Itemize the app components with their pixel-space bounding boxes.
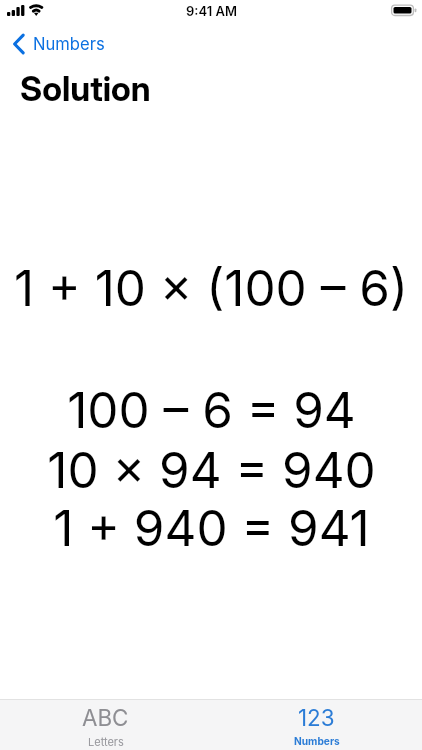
button[interactable]: 123 [211,700,422,750]
staticText: 100 – 6 = 94 [67,380,356,440]
button[interactable]: ABC [0,700,211,750]
staticText: 1 + 10 × (100 – 6) [14,258,408,318]
other: Back to Numbers [12,33,25,55]
staticText: 10 × 94 = 940 [47,440,376,500]
staticText: 123 [298,704,335,731]
staticText: Numbers [33,34,105,54]
staticText: ABC [82,704,129,731]
staticText: 1 + 940 = 941 [53,498,370,558]
staticText: Solution [20,68,151,109]
staticText: Numbers [294,735,340,747]
staticText: 9:41 AM [186,3,237,19]
button[interactable]: Back to Numbers [0,30,105,58]
staticText: Letters [88,735,124,748]
